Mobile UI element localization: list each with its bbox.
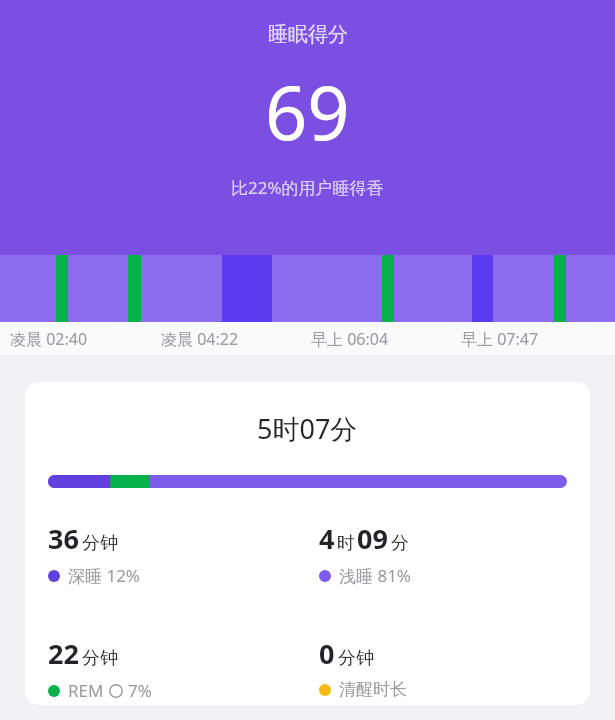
staticText: 7% — [128, 679, 152, 702]
button[interactable]: 4 — [319, 520, 590, 587]
staticText: 清醒时长 — [339, 679, 407, 700]
staticText: 浅睡 81% — [339, 564, 411, 587]
staticText: 睡眠得分 — [268, 22, 348, 47]
staticText: 36 — [48, 520, 79, 557]
staticText: 分钟 — [338, 647, 374, 670]
staticText: 比22%的用户睡得香 — [231, 176, 384, 199]
staticText: 分钟 — [82, 647, 118, 670]
staticText: 09 — [357, 520, 388, 557]
staticText: 分 — [391, 532, 409, 555]
staticText: 5时07分 — [257, 410, 358, 447]
other: REM info — [109, 684, 123, 698]
staticText: 凌晨 02:40 — [10, 328, 88, 350]
staticText: 深睡 12% — [68, 564, 140, 587]
staticText: 早上 07:47 — [461, 328, 539, 350]
staticText: 早上 06:04 — [311, 328, 389, 350]
staticText: 69 — [265, 61, 350, 162]
staticText: 22 — [48, 635, 79, 672]
staticText: 分钟 — [82, 532, 118, 555]
button[interactable]: 36 — [48, 520, 307, 587]
staticText: 0 — [319, 635, 335, 672]
button[interactable]: 0 — [319, 635, 590, 700]
staticText: REM — [68, 679, 104, 702]
staticText: 4 — [319, 520, 335, 557]
button[interactable]: 5时07分 — [25, 382, 590, 705]
staticText: 凌晨 04:22 — [161, 328, 239, 350]
staticText: 时 — [337, 532, 355, 555]
button[interactable]: 22 — [48, 635, 307, 702]
